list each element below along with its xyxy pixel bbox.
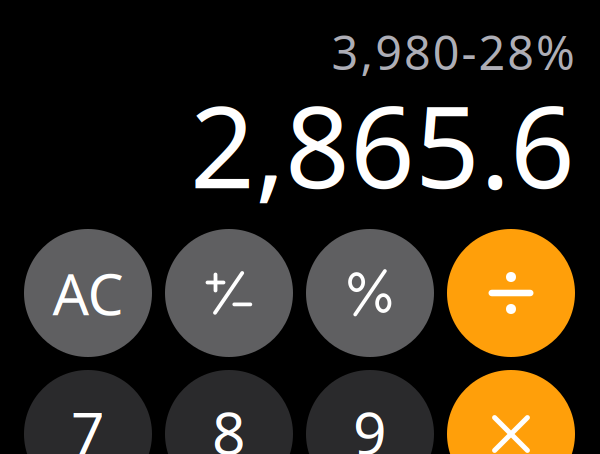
button[interactable]: 9 [306, 370, 434, 454]
staticText: 3,980-28% [332, 21, 575, 83]
button[interactable]: 8 [165, 370, 293, 454]
staticText: 2,865.6 [190, 69, 575, 219]
button[interactable]: Multiply [447, 370, 575, 454]
staticText: AC [52, 255, 123, 331]
staticText: 8 [212, 393, 246, 454]
staticText: 9 [353, 393, 387, 454]
button[interactable]: Plus minus [165, 229, 293, 357]
button[interactable]: Percent [306, 229, 434, 357]
staticText: 7 [71, 393, 105, 454]
button[interactable]: 7 [24, 370, 152, 454]
button[interactable]: Divide [447, 229, 575, 357]
button[interactable]: AC [24, 229, 152, 357]
